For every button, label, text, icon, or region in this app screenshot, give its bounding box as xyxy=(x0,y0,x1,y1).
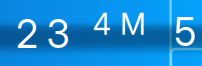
staticText: 4 xyxy=(92,6,111,42)
staticText: 5 xyxy=(174,9,196,55)
staticText: 2 xyxy=(16,11,38,57)
staticText: M xyxy=(120,6,146,42)
staticText: 3 xyxy=(46,11,69,57)
